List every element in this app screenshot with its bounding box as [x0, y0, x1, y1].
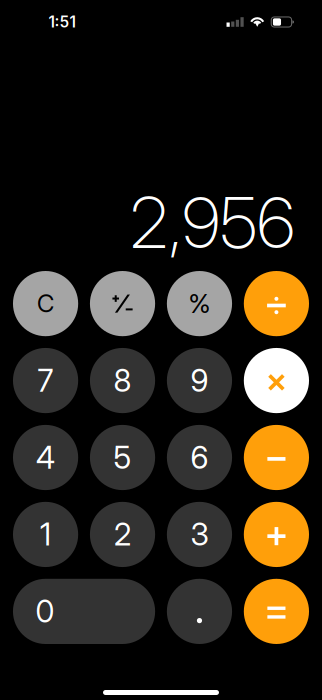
staticText: 9 [190, 362, 208, 399]
staticText: C [37, 289, 54, 318]
staticText: 8 [113, 362, 131, 399]
button[interactable]: 8 [90, 348, 155, 413]
button[interactable]: 2 [90, 502, 155, 567]
staticText: 1:51 [49, 13, 76, 31]
staticText: 2,956 [130, 180, 295, 265]
button[interactable]: 4 [13, 425, 78, 490]
button[interactable] [244, 425, 309, 490]
staticText: 7 [38, 362, 54, 399]
button[interactable]: % [167, 271, 232, 336]
button[interactable] [244, 502, 309, 567]
button[interactable]: 3 [167, 502, 232, 567]
button[interactable]: 9 [167, 348, 232, 413]
staticText: 2 [114, 516, 131, 553]
button[interactable] [167, 579, 232, 644]
button[interactable]: 6 [167, 425, 232, 490]
staticText: % [188, 288, 210, 319]
button[interactable] [244, 579, 309, 644]
staticText: 4 [36, 439, 55, 476]
staticText: 6 [190, 439, 208, 476]
staticText: 3 [190, 516, 208, 553]
button[interactable] [90, 271, 155, 336]
button[interactable]: 5 [90, 425, 155, 490]
staticText: 5 [113, 439, 131, 476]
button[interactable] [244, 348, 309, 413]
button[interactable]: 1 [13, 502, 78, 567]
button[interactable]: C [13, 271, 78, 336]
staticText: 1 [40, 516, 51, 553]
button[interactable]: 7 [13, 348, 78, 413]
button[interactable]: 0 [13, 579, 155, 644]
staticText: 0 [35, 593, 54, 630]
button[interactable] [244, 271, 309, 336]
